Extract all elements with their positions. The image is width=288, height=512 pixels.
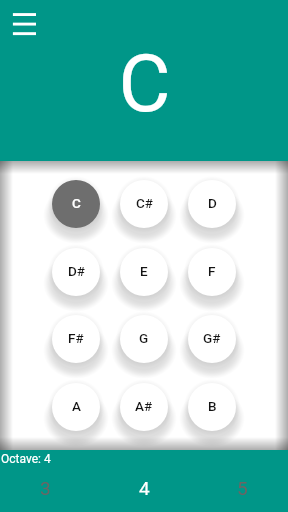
button[interactable]: D: [176, 168, 248, 240]
button[interactable]: C#: [108, 168, 180, 240]
button[interactable]: 3: [0, 468, 91, 508]
staticText: G: [139, 330, 149, 346]
button[interactable]: 5: [197, 468, 288, 508]
button[interactable]: Open navigation menu: [0, 0, 48, 48]
staticText: F#: [68, 330, 84, 346]
button[interactable]: A: [40, 371, 112, 443]
staticText: A: [72, 398, 81, 414]
button[interactable]: A#: [108, 371, 180, 443]
button[interactable]: G#: [176, 303, 248, 375]
staticText: 4: [139, 477, 150, 499]
staticText: C: [118, 37, 171, 131]
button[interactable]: F#: [40, 303, 112, 375]
staticText: 5: [237, 477, 248, 499]
staticText: 3: [40, 477, 51, 499]
staticText: C#: [136, 195, 153, 211]
staticText: E: [140, 263, 148, 279]
button[interactable]: D#: [40, 236, 112, 308]
staticText: F: [208, 263, 216, 279]
button[interactable]: G: [108, 303, 180, 375]
button[interactable]: E: [108, 236, 180, 308]
staticText: C: [72, 195, 81, 211]
staticText: D: [208, 195, 217, 211]
staticText: A#: [135, 398, 153, 414]
staticText: G#: [203, 330, 221, 346]
button[interactable]: B: [176, 371, 248, 443]
button[interactable]: 4: [91, 468, 197, 508]
staticText: D#: [68, 263, 85, 279]
staticText: Octave: 4: [1, 452, 51, 466]
button[interactable]: C: [40, 168, 112, 240]
button[interactable]: F: [176, 236, 248, 308]
staticText: B: [208, 398, 217, 414]
